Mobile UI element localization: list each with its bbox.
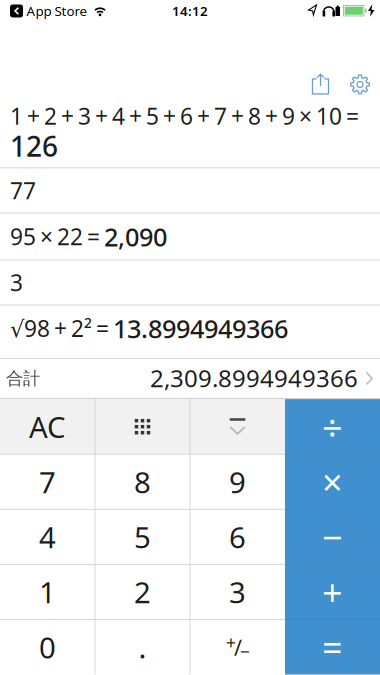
staticText: 4	[39, 517, 56, 556]
button[interactable]: 0	[0, 619, 95, 675]
staticText: AC	[29, 407, 66, 446]
button[interactable]: 9	[190, 454, 285, 509]
staticText: 9	[229, 462, 246, 501]
staticText: 3	[229, 572, 246, 611]
staticText: 6	[229, 517, 246, 556]
staticText: −	[322, 513, 343, 561]
staticText: +	[322, 568, 343, 616]
staticText: 7	[39, 462, 56, 501]
button[interactable]: Plus minus	[190, 619, 285, 675]
staticText: 8	[134, 462, 151, 501]
button[interactable]: 7	[0, 454, 95, 509]
button[interactable]: 3	[190, 564, 285, 619]
button[interactable]: +	[285, 564, 380, 619]
button[interactable]: ÷	[285, 399, 380, 454]
staticText: /	[234, 633, 242, 662]
button[interactable]: History grid	[95, 399, 190, 454]
staticText: 0	[39, 627, 56, 666]
button[interactable]: 6	[190, 509, 285, 564]
staticText: 1	[39, 572, 56, 611]
button[interactable]: 合計	[0, 359, 380, 399]
button[interactable]: 5	[95, 509, 190, 564]
button[interactable]: .	[95, 619, 190, 675]
staticText: .	[138, 627, 146, 666]
staticText: 合計	[6, 368, 40, 389]
staticText: 95 × 22 =	[10, 221, 104, 252]
staticText: 14:12	[172, 2, 208, 20]
button[interactable]: Share	[308, 71, 338, 97]
button[interactable]: AC	[0, 399, 95, 454]
staticText: 2,090	[104, 220, 167, 253]
staticText: 3	[10, 267, 23, 298]
staticText: 5	[134, 517, 151, 556]
staticText: 2,309.8994949366	[150, 362, 358, 394]
staticText: 1 + 2 + 3 + 4 + 5 + 6 + 7 + 8 + 9 × 10 =	[10, 101, 359, 131]
staticText: 2	[134, 572, 151, 611]
staticText: 77	[10, 175, 36, 205]
staticText: ÷	[322, 403, 343, 451]
staticText: 13.8994949366	[113, 311, 288, 345]
button[interactable]: ×	[285, 454, 380, 509]
staticText: =	[322, 623, 343, 671]
staticText: +	[226, 631, 236, 654]
button[interactable]: 2	[95, 564, 190, 619]
staticText: ×	[322, 458, 343, 506]
button[interactable]: Hide keypad	[190, 399, 285, 454]
staticText: √98 + 2² =	[10, 313, 113, 343]
button[interactable]: 1	[0, 564, 95, 619]
staticText: App Store	[26, 2, 87, 20]
staticText: 126	[10, 127, 58, 165]
staticText: −	[240, 640, 250, 663]
button[interactable]: 8	[95, 454, 190, 509]
button[interactable]: =	[285, 619, 380, 675]
button[interactable]: −	[285, 509, 380, 564]
button[interactable]: Settings	[348, 72, 372, 96]
button[interactable]: 4	[0, 509, 95, 564]
